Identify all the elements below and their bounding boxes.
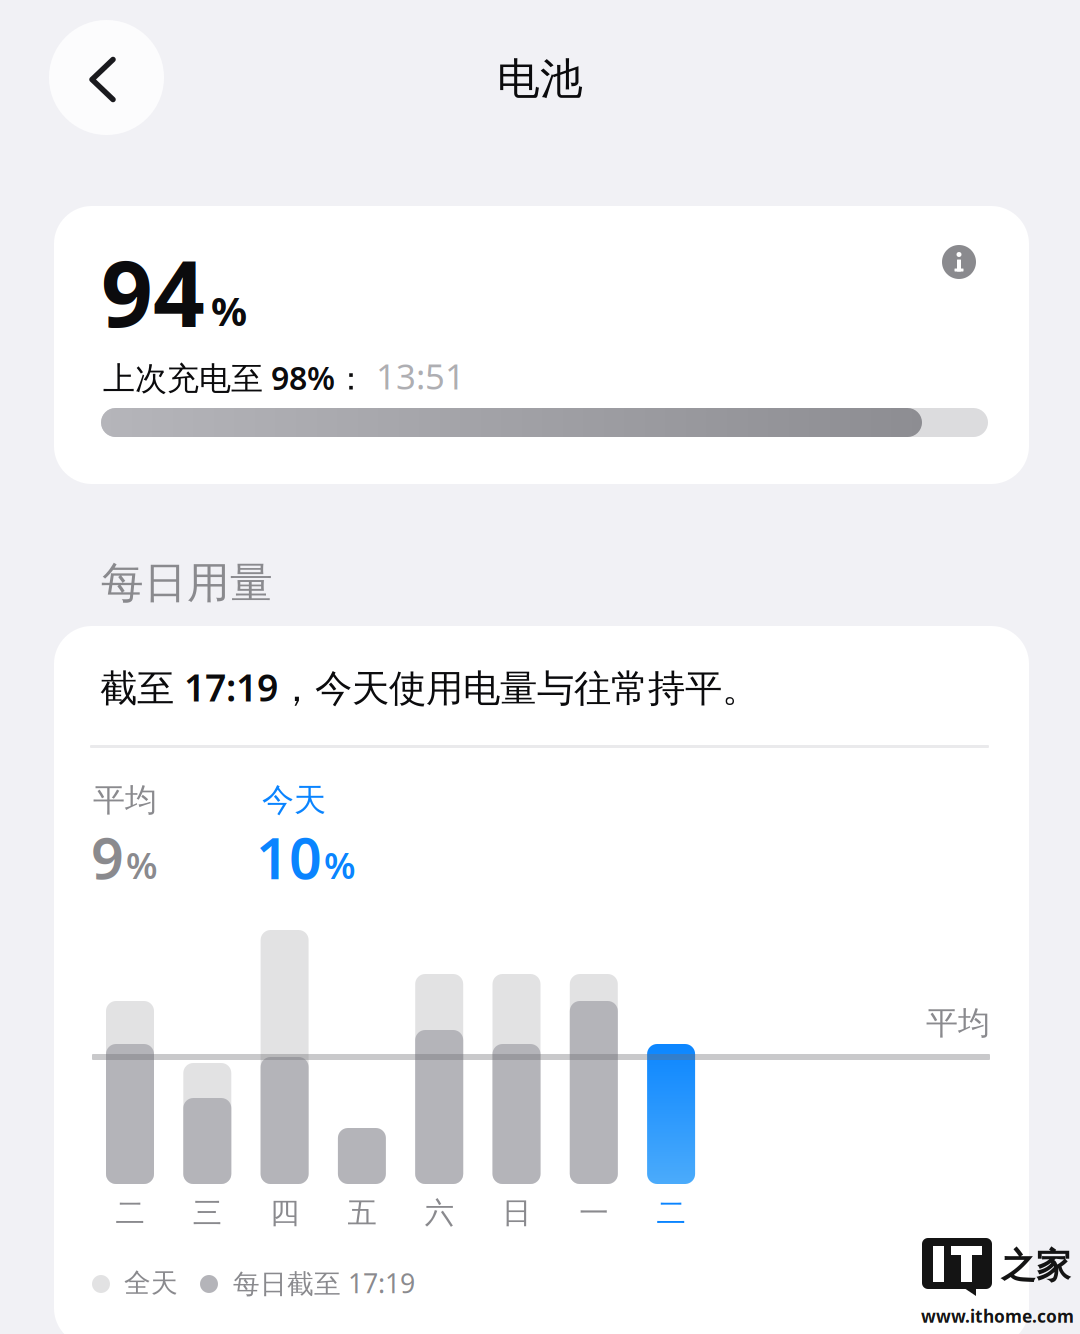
staticText: 10 xyxy=(256,819,322,895)
button[interactable]: Back xyxy=(49,20,164,135)
staticText: 五 xyxy=(347,1195,376,1231)
staticText: 二 xyxy=(115,1195,144,1231)
staticText: 之家 xyxy=(1001,1245,1071,1287)
staticText: 上次充电至 98%： xyxy=(103,356,367,399)
staticText: 13:51 xyxy=(367,353,465,399)
staticText: 今天 xyxy=(262,780,326,820)
staticText: 9 xyxy=(91,819,124,895)
staticText: 平均 xyxy=(926,1003,990,1043)
staticText: 全天 xyxy=(124,1267,178,1299)
staticText: % xyxy=(324,841,356,889)
staticText: 一 xyxy=(579,1195,608,1231)
staticText: www.ithome.com xyxy=(921,1304,1074,1327)
staticText: 94 xyxy=(101,232,205,352)
staticText: 三 xyxy=(193,1195,222,1231)
staticText: 每日截至 17:19 xyxy=(233,1265,415,1301)
staticText: 截至 17:19，今天使用电量与往常持平。 xyxy=(100,662,759,712)
staticText: 电池 xyxy=(497,53,583,105)
staticText: 日 xyxy=(502,1195,531,1231)
staticText: 每日用量 xyxy=(101,557,273,609)
staticText: % xyxy=(126,841,158,889)
staticText: 平均 xyxy=(93,780,157,820)
staticText: 四 xyxy=(270,1195,299,1231)
staticText: 二 xyxy=(657,1195,686,1231)
staticText: 六 xyxy=(425,1195,454,1231)
button[interactable]: Battery information xyxy=(942,245,976,279)
staticText: % xyxy=(211,284,247,337)
